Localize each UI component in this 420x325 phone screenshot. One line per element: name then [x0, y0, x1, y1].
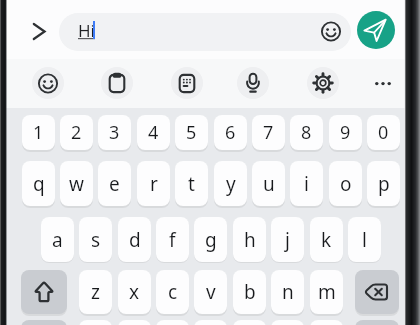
button[interactable]: 2 — [60, 115, 93, 150]
button[interactable]: Hi — [59, 13, 351, 51]
staticText: a — [52, 227, 63, 253]
staticText: n — [282, 279, 294, 305]
staticText: o — [340, 171, 352, 197]
button[interactable] — [118, 320, 151, 325]
button[interactable] — [21, 270, 67, 314]
staticText: t — [188, 171, 195, 197]
button[interactable]: v — [194, 270, 227, 314]
button[interactable] — [307, 67, 339, 99]
staticText: y — [226, 171, 236, 197]
staticText: z — [91, 279, 100, 305]
staticText: g — [205, 227, 217, 253]
button[interactable] — [367, 67, 399, 99]
button[interactable]: 4 — [137, 115, 170, 150]
button[interactable]: l — [348, 217, 381, 262]
staticText: h — [244, 227, 256, 253]
button[interactable]: 7 — [252, 115, 285, 150]
button[interactable]: h — [233, 217, 266, 262]
staticText: v — [206, 279, 216, 305]
button[interactable] — [79, 320, 112, 325]
button[interactable]: k — [310, 217, 343, 262]
staticText: q — [33, 171, 45, 197]
button[interactable]: u — [252, 161, 285, 206]
button[interactable]: f — [156, 217, 189, 262]
button[interactable]: z — [79, 270, 112, 314]
button[interactable]: t — [175, 161, 208, 206]
button[interactable]: q — [22, 161, 55, 206]
staticText: j — [285, 227, 290, 253]
staticText: e — [109, 171, 120, 197]
staticText: 2 — [71, 120, 82, 145]
staticText: p — [378, 171, 390, 197]
button[interactable]: 5 — [175, 115, 208, 150]
staticText: k — [321, 227, 332, 253]
button[interactable]: c — [156, 270, 189, 314]
staticText: c — [168, 279, 178, 305]
button[interactable]: 0 — [367, 115, 400, 150]
staticText: 7 — [263, 120, 274, 145]
staticText: x — [129, 279, 140, 305]
staticText: m — [318, 279, 336, 305]
staticText: 8 — [301, 120, 312, 145]
button[interactable]: 3 — [98, 115, 131, 150]
button[interactable] — [194, 320, 227, 325]
button[interactable] — [21, 320, 67, 325]
staticText: b — [244, 279, 256, 305]
button[interactable] — [171, 67, 203, 99]
staticText: Hi — [78, 19, 95, 42]
staticText: 3 — [109, 120, 120, 145]
staticText: 5 — [186, 120, 197, 145]
staticText: f — [169, 227, 176, 253]
button[interactable]: w — [60, 161, 93, 206]
staticText: l — [362, 227, 367, 253]
button[interactable]: 9 — [329, 115, 362, 150]
staticText: u — [263, 171, 275, 197]
button[interactable]: e — [98, 161, 131, 206]
button[interactable]: a — [41, 217, 74, 262]
button[interactable] — [32, 67, 64, 99]
button[interactable] — [310, 320, 343, 325]
button[interactable] — [237, 67, 269, 99]
button[interactable]: m — [310, 270, 343, 314]
button[interactable]: y — [214, 161, 247, 206]
button[interactable]: 8 — [290, 115, 323, 150]
button[interactable] — [355, 270, 399, 314]
button[interactable] — [27, 19, 51, 43]
button[interactable] — [233, 320, 266, 325]
staticText: s — [91, 227, 101, 253]
staticText: 4 — [148, 120, 159, 145]
button[interactable]: r — [137, 161, 170, 206]
button[interactable] — [355, 320, 399, 325]
staticText: r — [150, 171, 158, 197]
button[interactable]: j — [271, 217, 304, 262]
staticText: d — [129, 227, 141, 253]
staticText: i — [304, 171, 309, 197]
button[interactable]: s — [79, 217, 112, 262]
staticText: w — [69, 171, 84, 197]
button[interactable]: d — [118, 217, 151, 262]
button[interactable]: n — [271, 270, 304, 314]
button[interactable]: g — [194, 217, 227, 262]
button[interactable] — [156, 320, 189, 325]
button[interactable]: i — [290, 161, 323, 206]
button[interactable] — [101, 67, 133, 99]
button[interactable] — [357, 11, 395, 49]
button[interactable]: o — [329, 161, 362, 206]
button[interactable]: p — [367, 161, 400, 206]
staticText: 6 — [225, 120, 236, 145]
button[interactable]: x — [118, 270, 151, 314]
staticText: 0 — [378, 120, 389, 145]
staticText: 9 — [340, 120, 351, 145]
button[interactable]: 1 — [22, 115, 55, 150]
button[interactable]: 6 — [214, 115, 247, 150]
button[interactable] — [271, 320, 304, 325]
staticText: 1 — [33, 120, 44, 145]
button[interactable]: b — [233, 270, 266, 314]
